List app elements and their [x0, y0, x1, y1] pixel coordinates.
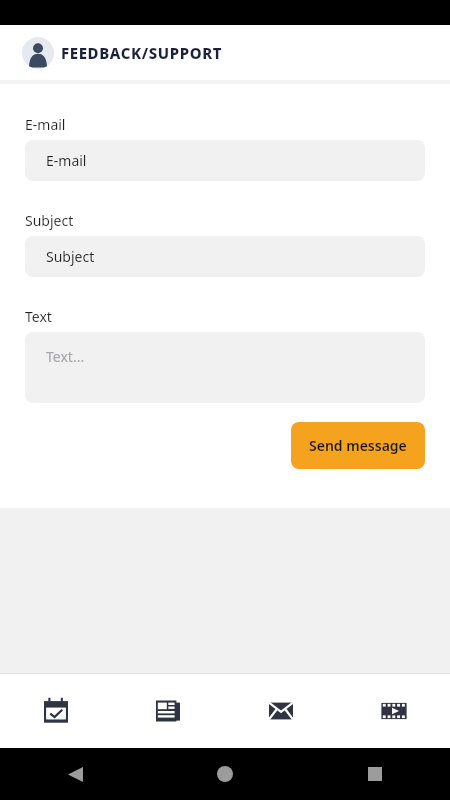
- staticText: Subject: [25, 211, 74, 230]
- button[interactable]: Mail: [224, 674, 337, 748]
- staticText: Send message: [309, 436, 407, 455]
- staticText: Subject: [46, 247, 95, 266]
- button[interactable]: Text...: [25, 332, 425, 403]
- staticText: E-mail: [46, 151, 87, 170]
- button[interactable]: Send message: [291, 422, 425, 469]
- button[interactable]: E-mail: [25, 140, 425, 181]
- button[interactable]: Home: [205, 754, 245, 794]
- staticText: Text...: [46, 347, 85, 366]
- button[interactable]: Profile: [22, 37, 54, 69]
- staticText: Text: [25, 307, 52, 326]
- staticText: FEEDBACK/SUPPORT: [61, 43, 223, 63]
- button[interactable]: Events: [0, 674, 112, 748]
- button[interactable]: Subject: [25, 236, 425, 277]
- button[interactable]: Videos: [337, 674, 450, 748]
- button[interactable]: Back: [55, 754, 95, 794]
- button[interactable]: News: [112, 674, 224, 748]
- staticText: E-mail: [25, 115, 66, 134]
- button[interactable]: Recent apps: [355, 754, 395, 794]
